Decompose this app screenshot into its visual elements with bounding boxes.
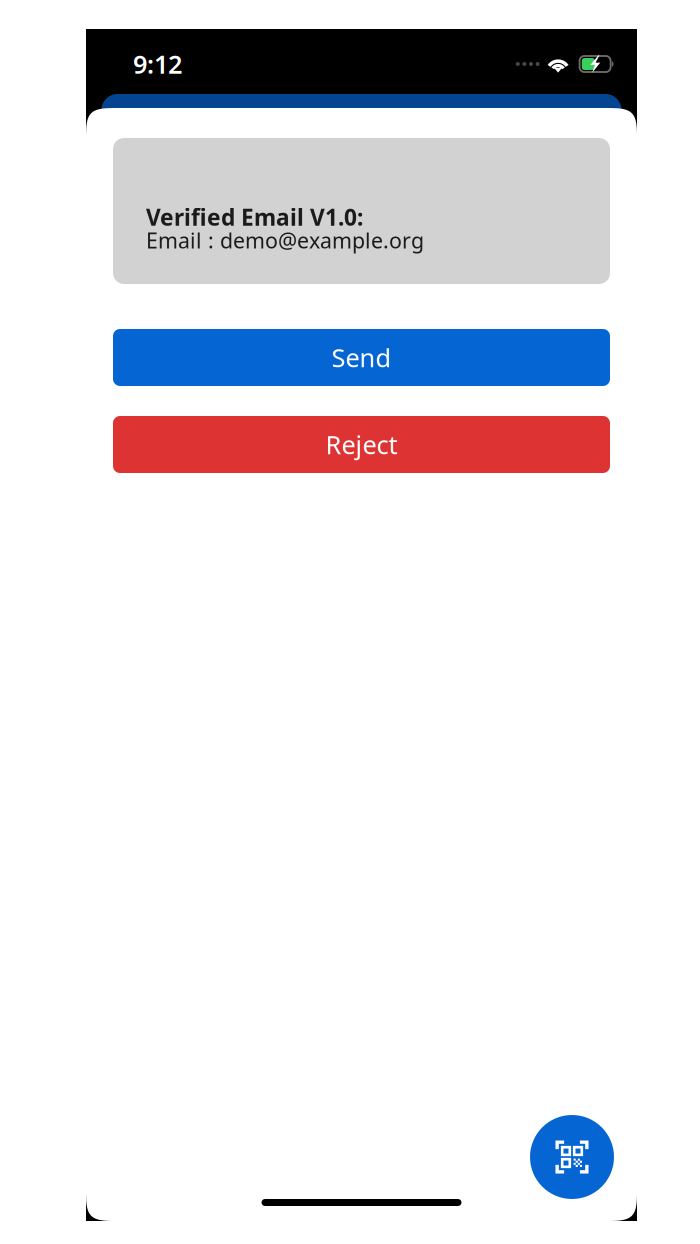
button[interactable]: Reject	[113, 416, 610, 473]
staticText: Reject	[325, 428, 397, 461]
staticText: Send	[331, 341, 391, 374]
staticText: Email : demo@example.org	[146, 226, 424, 254]
button[interactable]: Send	[113, 329, 610, 386]
staticText: 9:12	[133, 47, 182, 81]
button[interactable]: Scan QR code	[530, 1115, 614, 1199]
staticText: Verified Email V1.0:	[146, 202, 363, 232]
